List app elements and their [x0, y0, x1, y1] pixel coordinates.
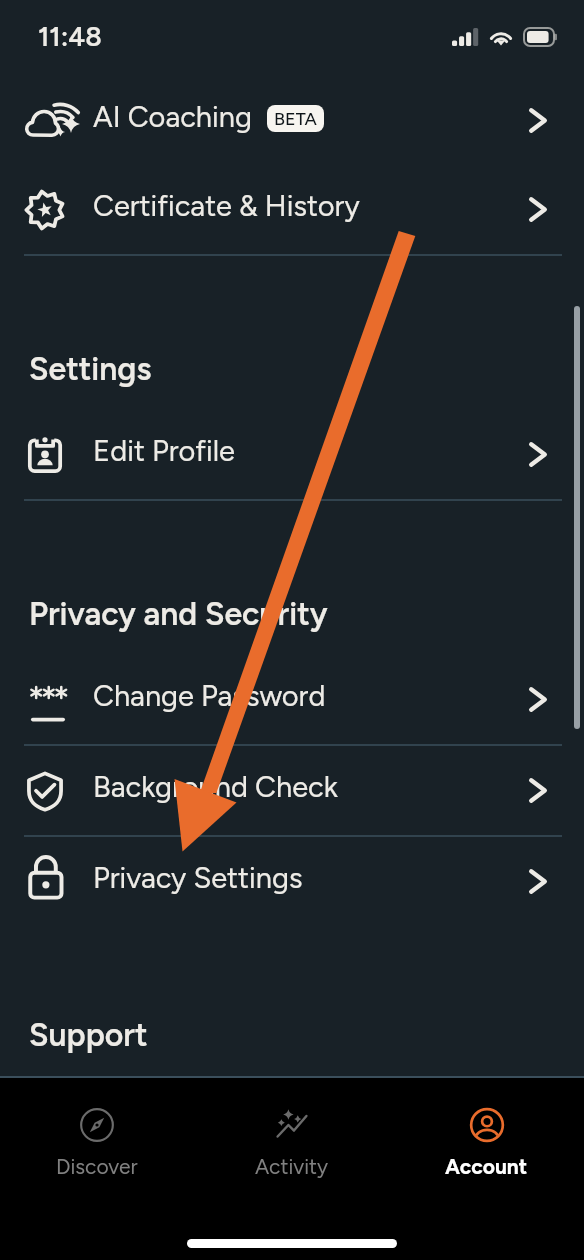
- other: Activity: [274, 1107, 310, 1143]
- staticText: Activity: [255, 1154, 329, 1179]
- button[interactable]: Privacy Settings: [0, 837, 584, 926]
- staticText: Certificate & History: [93, 188, 360, 223]
- staticText: Edit Profile: [93, 433, 235, 468]
- staticText: Privacy and Security: [29, 595, 328, 633]
- button[interactable]: Certificate & History: [0, 165, 584, 254]
- staticText: Account: [445, 1154, 528, 1179]
- button[interactable]: Activity: [194, 1078, 389, 1179]
- button[interactable]: Discover: [0, 1078, 194, 1179]
- button[interactable]: Edit Profile: [0, 410, 584, 499]
- staticText: BETA: [274, 108, 317, 130]
- button[interactable]: Account: [389, 1078, 584, 1179]
- staticText: 11:48: [38, 20, 102, 52]
- button[interactable]: Change Password: [0, 655, 584, 744]
- staticText: AI Coaching: [93, 99, 252, 134]
- staticText: Settings: [29, 350, 152, 388]
- staticText: Privacy Settings: [93, 860, 303, 895]
- button[interactable]: AI Coaching: [0, 76, 584, 165]
- other: Discover: [79, 1107, 115, 1143]
- other: Account: [469, 1107, 505, 1143]
- staticText: Support: [29, 1016, 148, 1054]
- staticText: Discover: [56, 1154, 138, 1179]
- staticText: Background Check: [93, 769, 338, 804]
- staticText: Change Password: [93, 678, 326, 713]
- button[interactable]: Background Check: [0, 746, 584, 835]
